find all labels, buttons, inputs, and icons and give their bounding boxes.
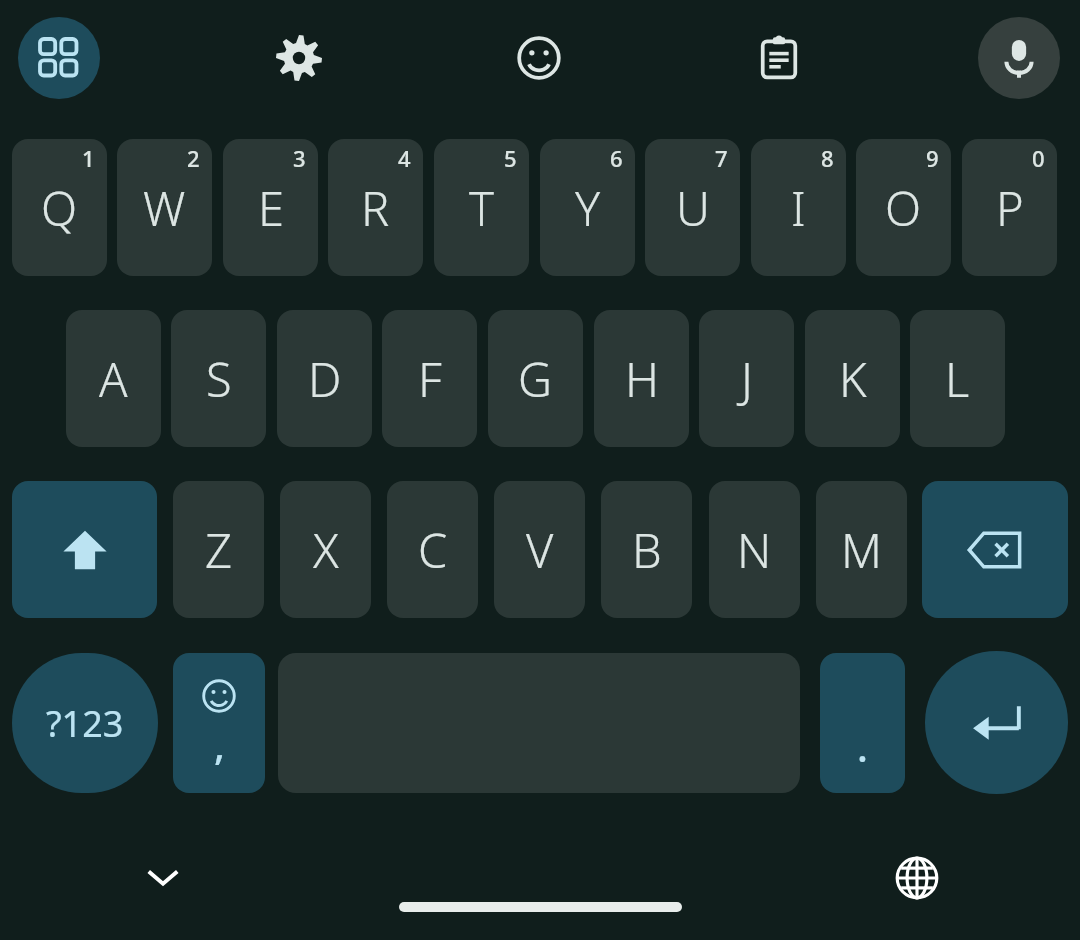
staticText: Y — [575, 176, 601, 240]
staticText: . — [857, 719, 868, 773]
staticText: Q — [41, 176, 78, 240]
button[interactable]: ?123 — [12, 653, 158, 793]
button[interactable]: B — [601, 481, 692, 618]
button[interactable]: F — [382, 310, 477, 447]
button[interactable]: X — [280, 481, 371, 618]
button[interactable]: E — [223, 139, 318, 276]
staticText: U — [676, 176, 710, 240]
button[interactable]: M — [816, 481, 907, 618]
staticText: 3 — [293, 143, 306, 173]
button[interactable]: W — [117, 139, 212, 276]
button[interactable]: Change language — [877, 838, 957, 918]
staticText: , — [214, 717, 225, 771]
button[interactable]: H — [594, 310, 689, 447]
button[interactable]: O — [856, 139, 951, 276]
button[interactable]: D — [277, 310, 372, 447]
button[interactable]: K — [805, 310, 900, 447]
staticText: 0 — [1032, 143, 1045, 173]
button[interactable]: G — [488, 310, 583, 447]
staticText: M — [841, 518, 882, 582]
staticText: I — [791, 176, 806, 240]
staticText: G — [518, 347, 553, 411]
staticText: 1 — [82, 143, 95, 173]
staticText: 9 — [926, 143, 939, 173]
staticText: 6 — [610, 143, 623, 173]
button[interactable]: Backspace — [922, 481, 1068, 618]
staticText: C — [418, 518, 448, 582]
staticText: E — [258, 176, 284, 240]
button[interactable]: Voice input — [978, 17, 1060, 99]
button[interactable]: S — [171, 310, 266, 447]
staticText: S — [206, 347, 232, 411]
staticText: 8 — [821, 143, 834, 173]
button[interactable]: . — [820, 653, 905, 793]
button[interactable]: Y — [540, 139, 635, 276]
staticText: J — [741, 347, 753, 411]
staticText: 5 — [504, 143, 517, 173]
staticText: Z — [205, 518, 233, 582]
button[interactable]: Emoji — [499, 18, 579, 98]
staticText: B — [632, 518, 662, 582]
staticText: K — [839, 347, 867, 411]
button[interactable]: N — [709, 481, 800, 618]
button[interactable]: L — [910, 310, 1005, 447]
staticText: D — [308, 347, 342, 411]
staticText: A — [99, 347, 128, 411]
button[interactable]: U — [645, 139, 740, 276]
staticText: F — [418, 347, 442, 411]
staticText: ?123 — [46, 699, 124, 748]
staticText: 2 — [187, 143, 200, 173]
button[interactable]: V — [494, 481, 585, 618]
button[interactable]: Clipboard — [739, 18, 819, 98]
button[interactable]: P — [962, 139, 1057, 276]
staticText: 7 — [715, 143, 728, 173]
button[interactable]: Keyboard switcher — [18, 17, 100, 99]
button[interactable]: C — [387, 481, 478, 618]
staticText: X — [313, 518, 339, 582]
button[interactable]: Settings — [259, 18, 339, 98]
button[interactable]: R — [328, 139, 423, 276]
button[interactable]: Hide keyboard — [123, 837, 203, 917]
button[interactable]: T — [434, 139, 529, 276]
button[interactable]: A — [66, 310, 161, 447]
staticText: T — [469, 176, 494, 240]
staticText: N — [737, 518, 772, 582]
button[interactable]: I — [751, 139, 846, 276]
button[interactable]: J — [699, 310, 794, 447]
button[interactable]: Shift — [12, 481, 157, 618]
button[interactable]: Z — [173, 481, 264, 618]
staticText: 4 — [398, 143, 411, 173]
staticText: V — [526, 518, 554, 582]
staticText: W — [143, 176, 186, 240]
staticText: P — [996, 176, 1024, 240]
button[interactable]: Q — [12, 139, 107, 276]
staticText: R — [361, 176, 390, 240]
button[interactable]: Emoji and comma — [173, 653, 265, 793]
staticText: O — [885, 176, 922, 240]
staticText: H — [625, 347, 659, 411]
staticText: L — [945, 347, 970, 411]
button[interactable]: Enter — [925, 651, 1068, 794]
